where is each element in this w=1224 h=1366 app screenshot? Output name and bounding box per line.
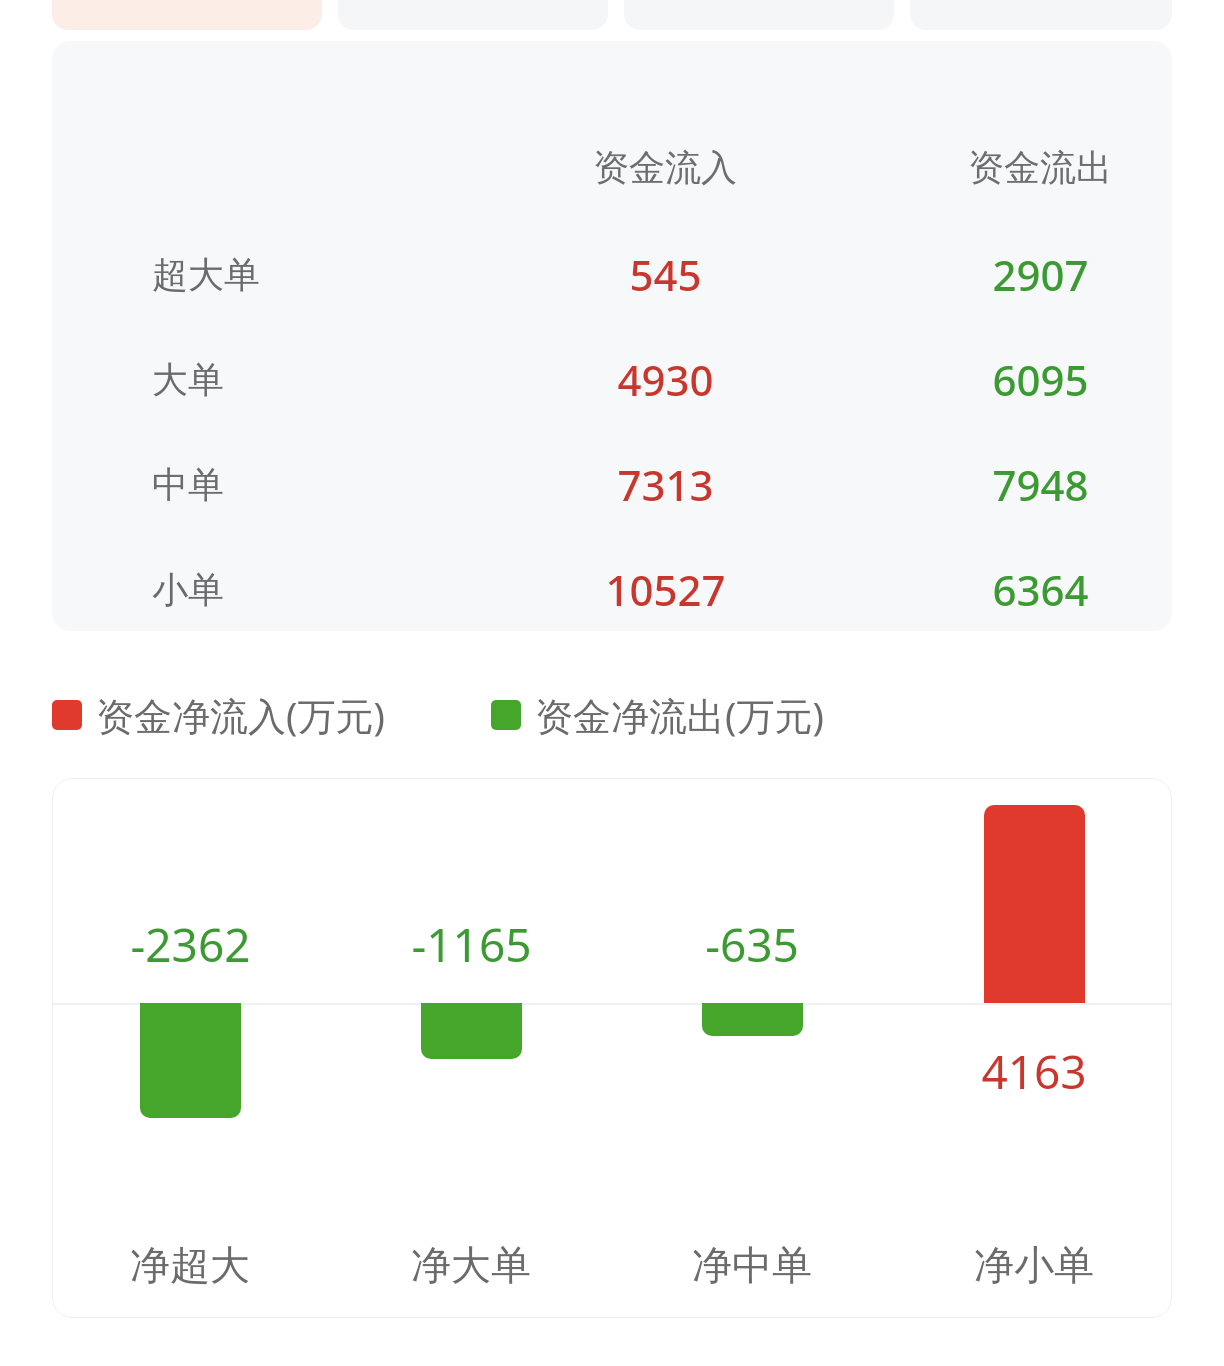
- staticText: 7948: [992, 456, 1089, 513]
- staticText: 6095: [992, 351, 1089, 408]
- staticText: 净小单: [974, 1240, 1094, 1290]
- staticText: 4930: [617, 351, 714, 408]
- staticText: 净中单: [692, 1240, 812, 1290]
- staticText: -635: [705, 913, 799, 976]
- staticText: 资金流出: [968, 145, 1112, 190]
- staticText: -2362: [130, 913, 251, 976]
- staticText: 资金净流出(万元): [535, 689, 824, 741]
- staticText: 净超大: [130, 1240, 250, 1290]
- staticText: 545: [629, 246, 702, 303]
- staticText: 小单: [152, 567, 224, 612]
- staticText: 7313: [617, 456, 714, 513]
- staticText: -1165: [411, 913, 532, 976]
- staticText: 净大单: [411, 1240, 531, 1290]
- staticText: 4163: [981, 1040, 1087, 1103]
- button[interactable]: 资金净流出(万元): [491, 689, 824, 741]
- staticText: 超大单: [152, 252, 260, 297]
- staticText: 资金净流入(万元): [96, 689, 385, 741]
- staticText: 资金流入: [593, 145, 737, 190]
- staticText: 2907: [992, 246, 1089, 303]
- button[interactable]: 资金流入: [52, 41, 1172, 631]
- staticText: 6364: [992, 561, 1089, 618]
- staticText: 大单: [152, 357, 224, 402]
- button[interactable]: 资金净流入(万元): [52, 689, 385, 741]
- staticText: 10527: [605, 561, 726, 618]
- staticText: 中单: [152, 462, 224, 507]
- button[interactable]: -2362: [52, 778, 1172, 1318]
